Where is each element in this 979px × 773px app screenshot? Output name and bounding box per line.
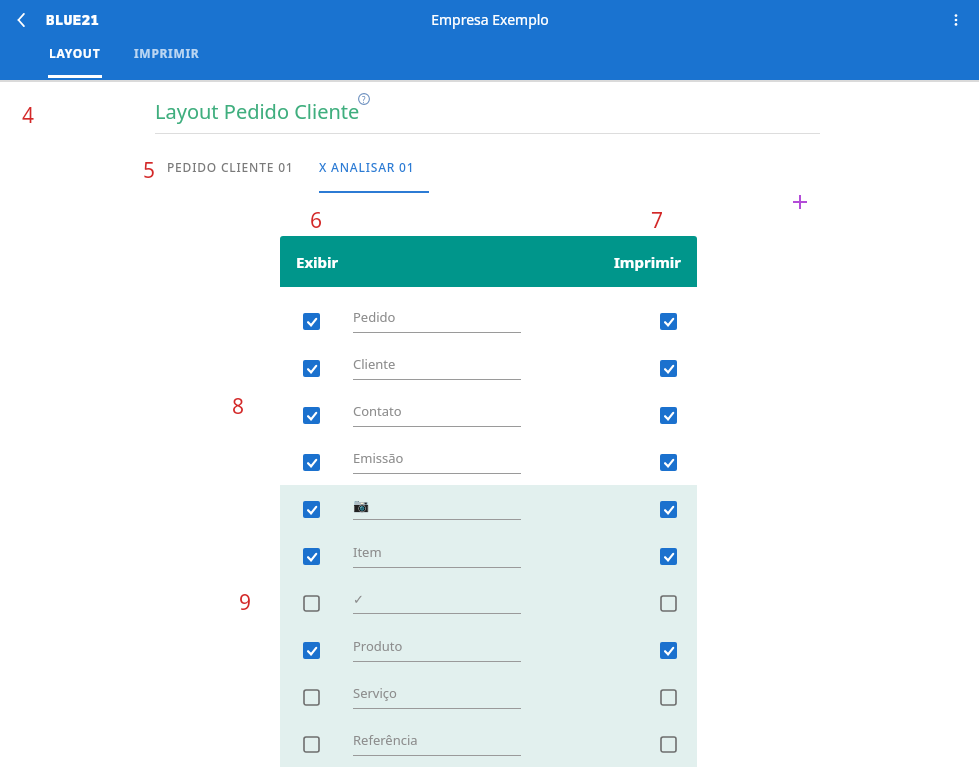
button[interactable]: More options: [941, 5, 971, 35]
button[interactable]: Unchecked: [653, 682, 683, 712]
button[interactable]: Checked: [653, 400, 683, 430]
staticText: Empresa Exemplo: [431, 10, 549, 29]
staticText: PEDIDO CLIENTE 01: [167, 159, 294, 175]
staticText: Item: [353, 543, 382, 561]
button[interactable]: Checked: [296, 447, 326, 477]
button[interactable]: Add: [788, 190, 812, 214]
button[interactable]: 📷: [353, 498, 521, 520]
button[interactable]: Contato: [353, 402, 521, 427]
staticText: ✓: [353, 592, 364, 607]
button[interactable]: PEDIDO CLIENTE 01: [167, 159, 294, 175]
button[interactable]: Help: [355, 90, 373, 108]
button[interactable]: Unchecked: [653, 729, 683, 759]
button[interactable]: X ANALISAR 01: [319, 159, 429, 193]
button[interactable]: Checked: [296, 541, 326, 571]
staticText: LAYOUT: [49, 45, 101, 61]
staticText: 📷: [353, 498, 370, 513]
staticText: Contato: [353, 402, 402, 420]
button[interactable]: Checked: [653, 447, 683, 477]
button[interactable]: IMPRIMIR: [132, 45, 202, 61]
staticText: 9: [239, 588, 252, 617]
button[interactable]: Serviço: [353, 684, 521, 709]
staticText: 6: [310, 206, 323, 235]
button[interactable]: Checked: [296, 306, 326, 336]
button[interactable]: Pedido: [353, 308, 521, 333]
button[interactable]: Unchecked: [296, 682, 326, 712]
staticText: Imprimir: [614, 252, 681, 272]
staticText: 8: [232, 392, 245, 421]
button[interactable]: Cliente: [353, 355, 521, 380]
staticText: Produto: [353, 637, 403, 655]
button[interactable]: Back: [8, 6, 36, 34]
staticText: Exibir: [296, 252, 339, 272]
staticText: X ANALISAR 01: [319, 159, 415, 175]
staticText: Layout Pedido Cliente: [155, 98, 360, 125]
staticText: ?: [362, 94, 366, 105]
button[interactable]: Unchecked: [653, 588, 683, 618]
staticText: 4: [22, 101, 35, 130]
staticText: IMPRIMIR: [134, 45, 200, 61]
button[interactable]: Produto: [353, 637, 521, 662]
button[interactable]: Checked: [653, 541, 683, 571]
button[interactable]: Checked: [653, 494, 683, 524]
button[interactable]: Checked: [296, 494, 326, 524]
button[interactable]: Unchecked: [296, 729, 326, 759]
staticText: Pedido: [353, 308, 396, 326]
button[interactable]: Checked: [653, 353, 683, 383]
button[interactable]: Checked: [653, 306, 683, 336]
staticText: Serviço: [353, 684, 397, 702]
button[interactable]: Checked: [296, 353, 326, 383]
staticText: 7: [651, 206, 664, 235]
staticText: 5: [143, 156, 156, 185]
button[interactable]: Emissão: [353, 449, 521, 474]
button[interactable]: Checked: [296, 635, 326, 665]
button[interactable]: Item: [353, 543, 521, 568]
button[interactable]: Unchecked: [296, 588, 326, 618]
staticText: Cliente: [353, 355, 396, 373]
staticText: BLUE21: [46, 10, 100, 29]
button[interactable]: Checked: [296, 400, 326, 430]
button[interactable]: ✓: [353, 592, 521, 614]
staticText: Emissão: [353, 449, 404, 467]
button[interactable]: Checked: [653, 635, 683, 665]
staticText: Referência: [353, 731, 418, 749]
button[interactable]: LAYOUT: [46, 45, 104, 78]
button[interactable]: Referência: [353, 731, 521, 756]
